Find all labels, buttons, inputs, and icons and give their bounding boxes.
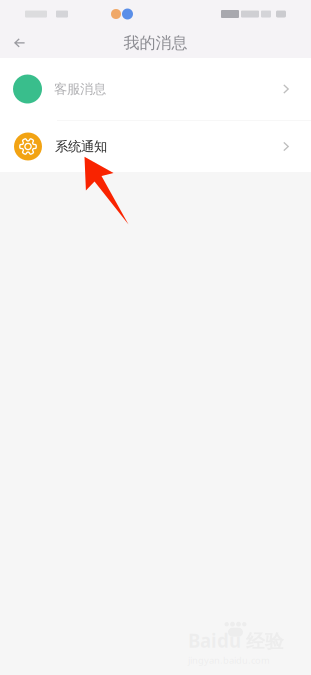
button[interactable]: 系统通知	[0, 121, 311, 172]
staticText: 客服消息	[54, 81, 106, 97]
staticText: 系统通知	[55, 138, 107, 155]
button[interactable]: 客服消息	[0, 58, 311, 120]
button[interactable]: Back	[7, 30, 33, 56]
staticText: 我的消息	[123, 33, 187, 53]
staticText: Baidu 经验	[188, 628, 284, 653]
